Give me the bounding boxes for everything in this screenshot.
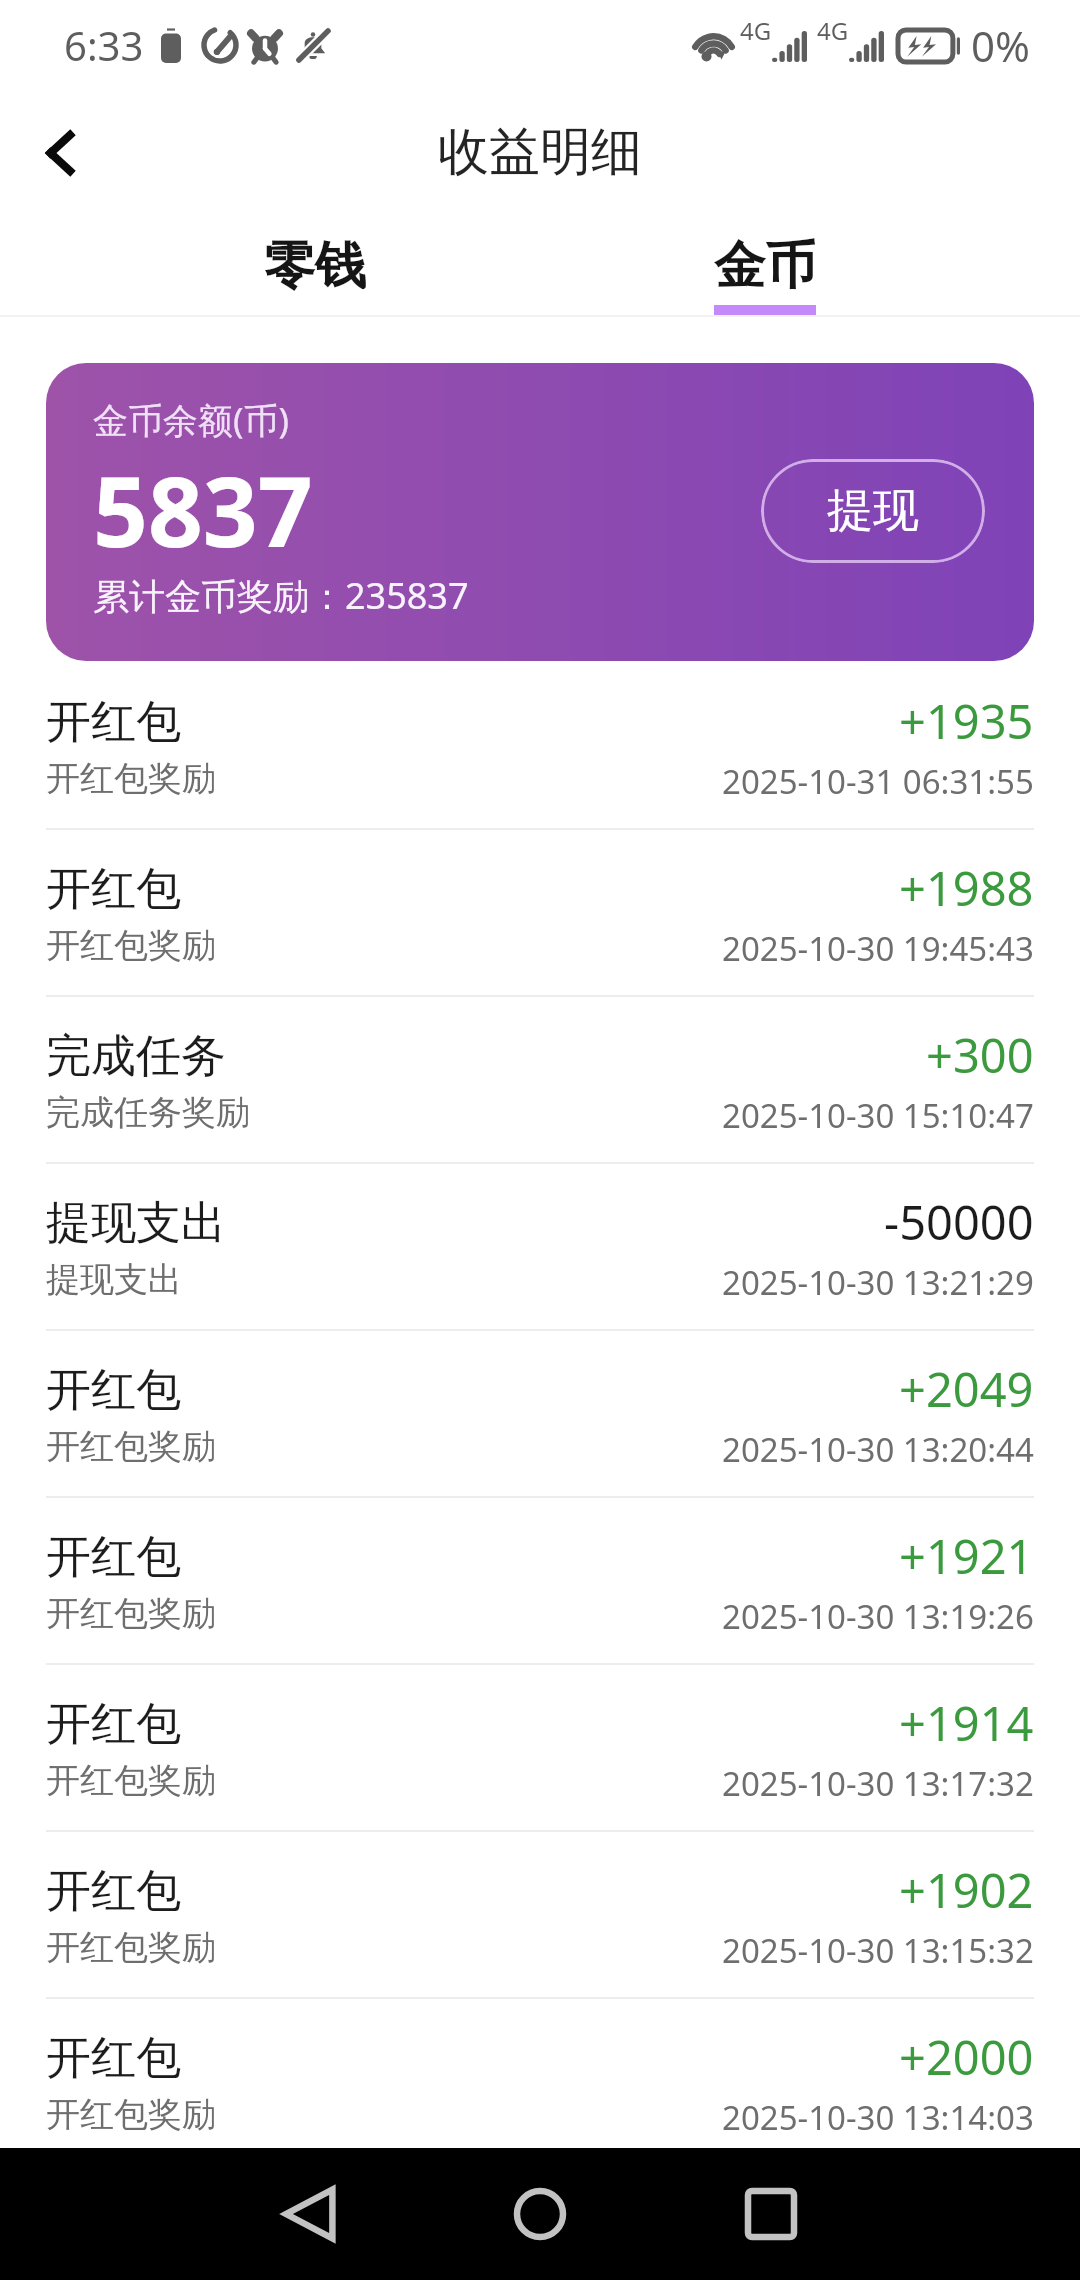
staticText: 2025-10-30 13:20:44 (722, 1427, 1034, 1472)
staticText: 开红包奖励 (46, 1425, 216, 1468)
staticText: +2049 (899, 1357, 1034, 1421)
staticText: -50000 (884, 1190, 1034, 1254)
staticText: 收益明细 (438, 120, 642, 184)
staticText: 4G (740, 14, 772, 47)
staticText: 零钱 (264, 234, 366, 298)
staticText: 开红包奖励 (46, 757, 216, 800)
staticText: 2025-10-30 19:45:43 (722, 926, 1034, 971)
staticText: +1988 (899, 856, 1034, 920)
staticText: 完成任务奖励 (46, 1091, 250, 1134)
staticText: 开红包奖励 (46, 1592, 216, 1635)
staticText: 完成任务 (46, 1028, 226, 1085)
button[interactable]: 开红包 (0, 1832, 1080, 1999)
staticText: 2025-10-30 15:10:47 (722, 1093, 1034, 1138)
button[interactable]: 金币 (540, 206, 990, 317)
staticText: 提现支出 (46, 1195, 226, 1252)
button[interactable]: 开红包 (0, 1331, 1080, 1498)
staticText: 开红包 (46, 694, 181, 751)
button[interactable]: 开红包 (0, 830, 1080, 997)
button[interactable]: Recents (711, 2154, 831, 2274)
button[interactable]: 零钱 (90, 206, 540, 317)
staticText: 6:33 (64, 18, 144, 72)
staticText: 2025-10-30 13:21:29 (722, 1260, 1034, 1305)
button[interactable]: 完成任务 (0, 997, 1080, 1164)
staticText: 开红包 (46, 861, 181, 918)
staticText: 累计金币奖励：235837 (93, 571, 469, 620)
staticText: 提现支出 (46, 1258, 182, 1301)
button[interactable]: System back (249, 2154, 369, 2274)
button[interactable]: 开红包 (0, 1665, 1080, 1832)
button[interactable]: Home (480, 2154, 600, 2274)
staticText: 2025-10-30 13:19:26 (722, 1594, 1034, 1639)
staticText: 开红包 (46, 2030, 181, 2087)
staticText: +1935 (899, 689, 1034, 753)
staticText: 开红包 (46, 1362, 181, 1419)
staticText: 2025-10-30 13:15:32 (722, 1928, 1034, 1973)
staticText: 0% (971, 17, 1030, 74)
button[interactable]: 开红包 (0, 663, 1080, 830)
staticText: +1914 (899, 1691, 1034, 1755)
button[interactable]: 开红包 (0, 1498, 1080, 1665)
button[interactable]: Back (16, 109, 104, 197)
staticText: 4G (817, 14, 849, 47)
staticText: 提现 (827, 482, 919, 540)
staticText: +1921 (899, 1524, 1034, 1588)
staticText: 开红包奖励 (46, 924, 216, 967)
staticText: 5837 (93, 444, 313, 575)
staticText: 金币余额(币) (93, 396, 290, 444)
staticText: 2025-10-30 13:14:03 (722, 2095, 1034, 2140)
button[interactable]: 开红包 (0, 1999, 1080, 2166)
staticText: +300 (926, 1023, 1034, 1087)
staticText: 开红包奖励 (46, 2093, 216, 2136)
staticText: 金币 (714, 234, 816, 298)
staticText: 2025-10-31 06:31:55 (722, 759, 1034, 804)
button[interactable]: 提现 (761, 459, 985, 563)
staticText: 开红包 (46, 1696, 181, 1753)
staticText: 开红包 (46, 1863, 181, 1920)
staticText: 开红包奖励 (46, 1759, 216, 1802)
staticText: 2025-10-30 13:17:32 (722, 1761, 1034, 1806)
staticText: 开红包 (46, 1529, 181, 1586)
staticText: +2000 (899, 2025, 1034, 2089)
staticText: 开红包奖励 (46, 1926, 216, 1969)
button[interactable]: 提现支出 (0, 1164, 1080, 1331)
staticText: +1902 (899, 1858, 1034, 1922)
